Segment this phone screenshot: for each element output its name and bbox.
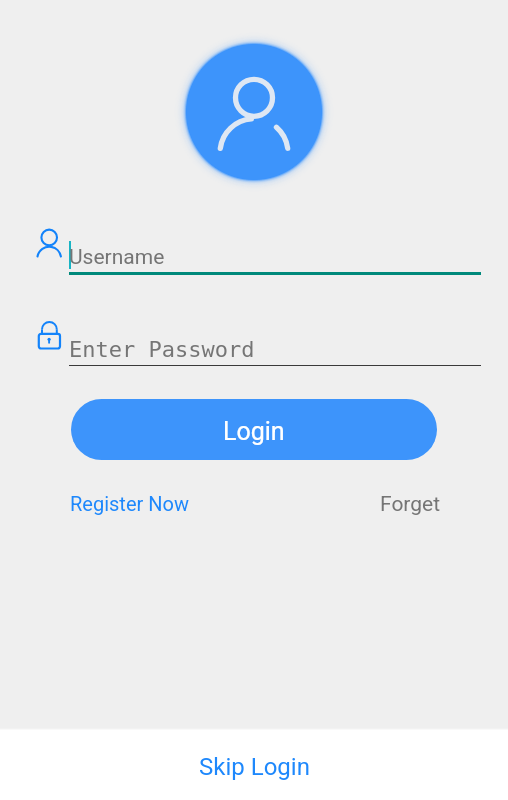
button[interactable]: Username input bbox=[33, 222, 481, 275]
button[interactable]: Login bbox=[71, 399, 437, 460]
button[interactable]: Skip Login bbox=[0, 730, 508, 800]
staticText: Login bbox=[223, 417, 285, 446]
staticText: Skip Login bbox=[199, 753, 310, 781]
button[interactable]: Register Now bbox=[70, 492, 189, 515]
other: Profile avatar bbox=[162, 20, 346, 204]
staticText: Register Now bbox=[70, 492, 189, 515]
staticText: Username bbox=[69, 245, 165, 270]
button[interactable]: Password input bbox=[33, 318, 481, 366]
staticText: Enter Password bbox=[69, 337, 255, 363]
staticText: Forget bbox=[380, 492, 441, 517]
button[interactable]: Forget bbox=[380, 492, 441, 517]
